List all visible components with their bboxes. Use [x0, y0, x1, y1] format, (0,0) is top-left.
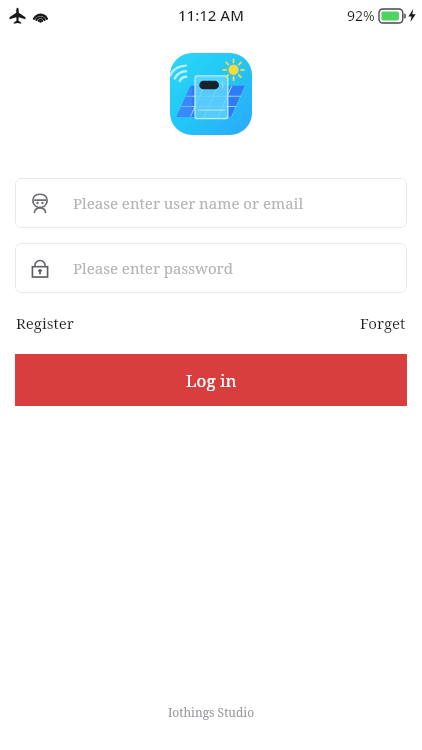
staticText: Forget [360, 313, 406, 333]
button[interactable]: Forget [359, 310, 407, 336]
staticText: Please enter user name or email [73, 193, 304, 213]
staticText: Iothings Studio [0, 704, 422, 720]
staticText: Register [16, 313, 74, 333]
other: Password [29, 257, 51, 279]
button[interactable]: Log in [15, 354, 407, 406]
button[interactable]: Register [15, 310, 75, 336]
staticText: Log in [186, 369, 237, 392]
other: User name [29, 192, 51, 214]
button[interactable]: User name [15, 178, 407, 228]
button[interactable]: Password [15, 243, 407, 293]
staticText: Please enter password [73, 258, 233, 278]
staticText: 11:12 AM [178, 5, 244, 25]
staticText: 92% [347, 6, 375, 25]
